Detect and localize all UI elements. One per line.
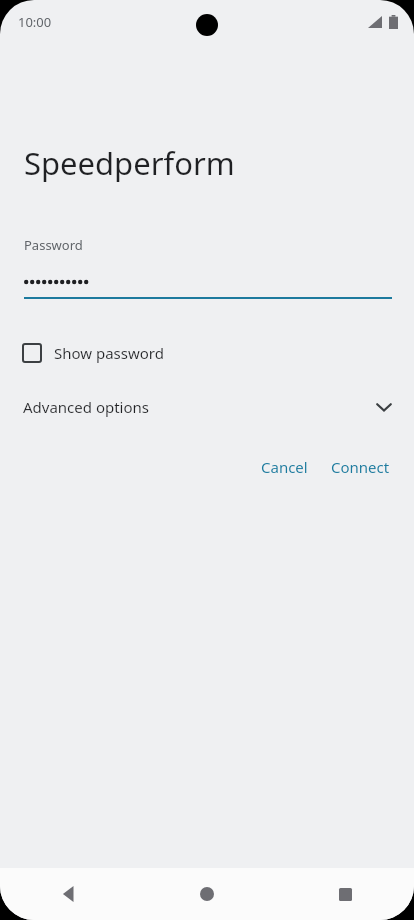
button[interactable]: Home [138, 868, 276, 920]
staticText: 10:00 [18, 13, 52, 31]
staticText: Advanced options [23, 397, 150, 417]
staticText: Cancel [261, 457, 308, 477]
staticText: Show password [54, 343, 164, 363]
button[interactable]: Show password [23, 343, 164, 363]
button[interactable]: Cancel [253, 451, 316, 483]
staticText: Connect [331, 457, 390, 477]
button[interactable]: Recent apps [276, 868, 414, 920]
button[interactable]: Advanced options [0, 389, 414, 425]
other: Expand advanced options [374, 397, 394, 417]
button[interactable] [24, 276, 414, 288]
button[interactable]: Connect [323, 451, 398, 483]
staticText: Password [24, 236, 83, 254]
staticText: Speedperform [24, 142, 235, 184]
button[interactable]: Back [0, 868, 138, 920]
